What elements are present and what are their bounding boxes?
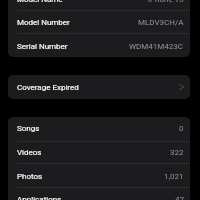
staticText: Videos bbox=[17, 148, 42, 157]
button[interactable]: Coverage Expired bbox=[8, 75, 190, 99]
button[interactable]: Songs bbox=[8, 117, 190, 140]
staticText: iPhone 15 bbox=[148, 0, 184, 4]
staticText: Applications bbox=[17, 195, 62, 200]
button[interactable]: Applications bbox=[8, 187, 190, 200]
staticText: 322 bbox=[170, 148, 184, 157]
staticText: Model Name bbox=[17, 0, 63, 4]
staticText: 47 bbox=[175, 195, 184, 200]
staticText: 0 bbox=[179, 124, 184, 133]
staticText: Photos bbox=[17, 172, 43, 181]
staticText: Serial Number bbox=[17, 42, 68, 51]
staticText: Model Number bbox=[17, 18, 70, 27]
staticText: MLDV3CH/A bbox=[138, 18, 184, 27]
staticText: WDM41M423C bbox=[129, 42, 184, 51]
button[interactable]: Photos bbox=[8, 164, 190, 188]
staticText: Songs bbox=[17, 124, 40, 133]
staticText: Coverage Expired bbox=[17, 83, 79, 92]
button[interactable]: Serial Number bbox=[8, 34, 190, 57]
button[interactable]: Videos bbox=[8, 140, 190, 164]
button[interactable]: Model Number bbox=[8, 10, 190, 34]
button[interactable]: Model Name bbox=[8, 0, 190, 11]
staticText: 1,021 bbox=[164, 172, 184, 181]
